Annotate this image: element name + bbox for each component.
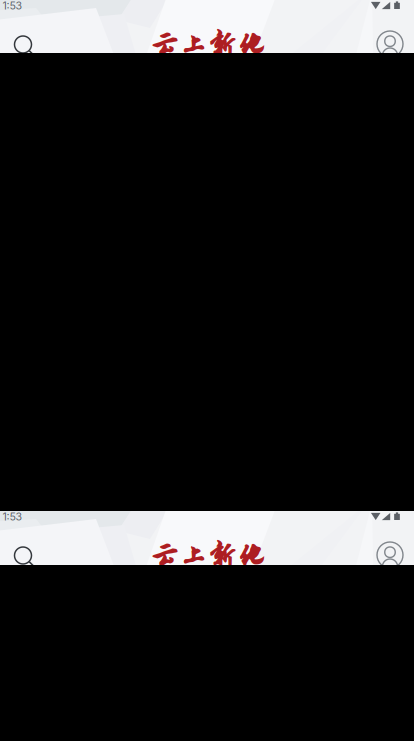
button[interactable]: Account <box>368 22 412 66</box>
staticText: 1:53 <box>2 0 22 12</box>
button[interactable]: Search <box>4 25 48 69</box>
staticText: 云上新化 <box>150 540 266 572</box>
button[interactable]: Account <box>368 533 412 577</box>
staticText: 1:53 <box>2 510 22 523</box>
button[interactable]: Search <box>4 536 48 580</box>
staticText: 云上新化 <box>150 29 266 61</box>
